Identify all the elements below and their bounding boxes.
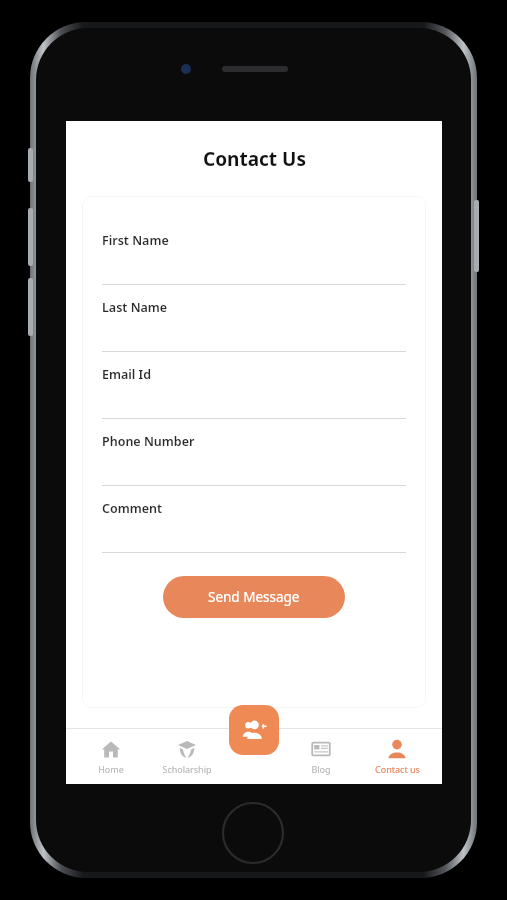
staticText: First Name [102,232,169,249]
button[interactable]: Scholarship [152,735,222,779]
staticText: Comment [102,500,163,517]
button[interactable]: Contact us [362,735,432,779]
button[interactable]: Blog [286,735,356,779]
button[interactable]: Home [76,735,146,779]
staticText: Send Message [208,588,300,606]
button[interactable]: Add contact [229,705,279,755]
button[interactable]: First Name [102,218,406,285]
staticText: Blog [311,763,331,775]
staticText: Last Name [102,299,168,316]
staticText: Home [98,763,124,775]
button[interactable]: Email Id [102,352,406,419]
button[interactable]: Comment [102,486,406,553]
staticText: Email Id [102,366,152,383]
staticText: Scholarship [162,763,212,775]
button[interactable]: Phone Number [102,419,406,486]
button[interactable]: Send Message [163,576,345,618]
staticText: Phone Number [102,433,195,450]
staticText: Contact Us [203,146,306,172]
staticText: Contact us [375,763,420,775]
button[interactable]: Last Name [102,285,406,352]
